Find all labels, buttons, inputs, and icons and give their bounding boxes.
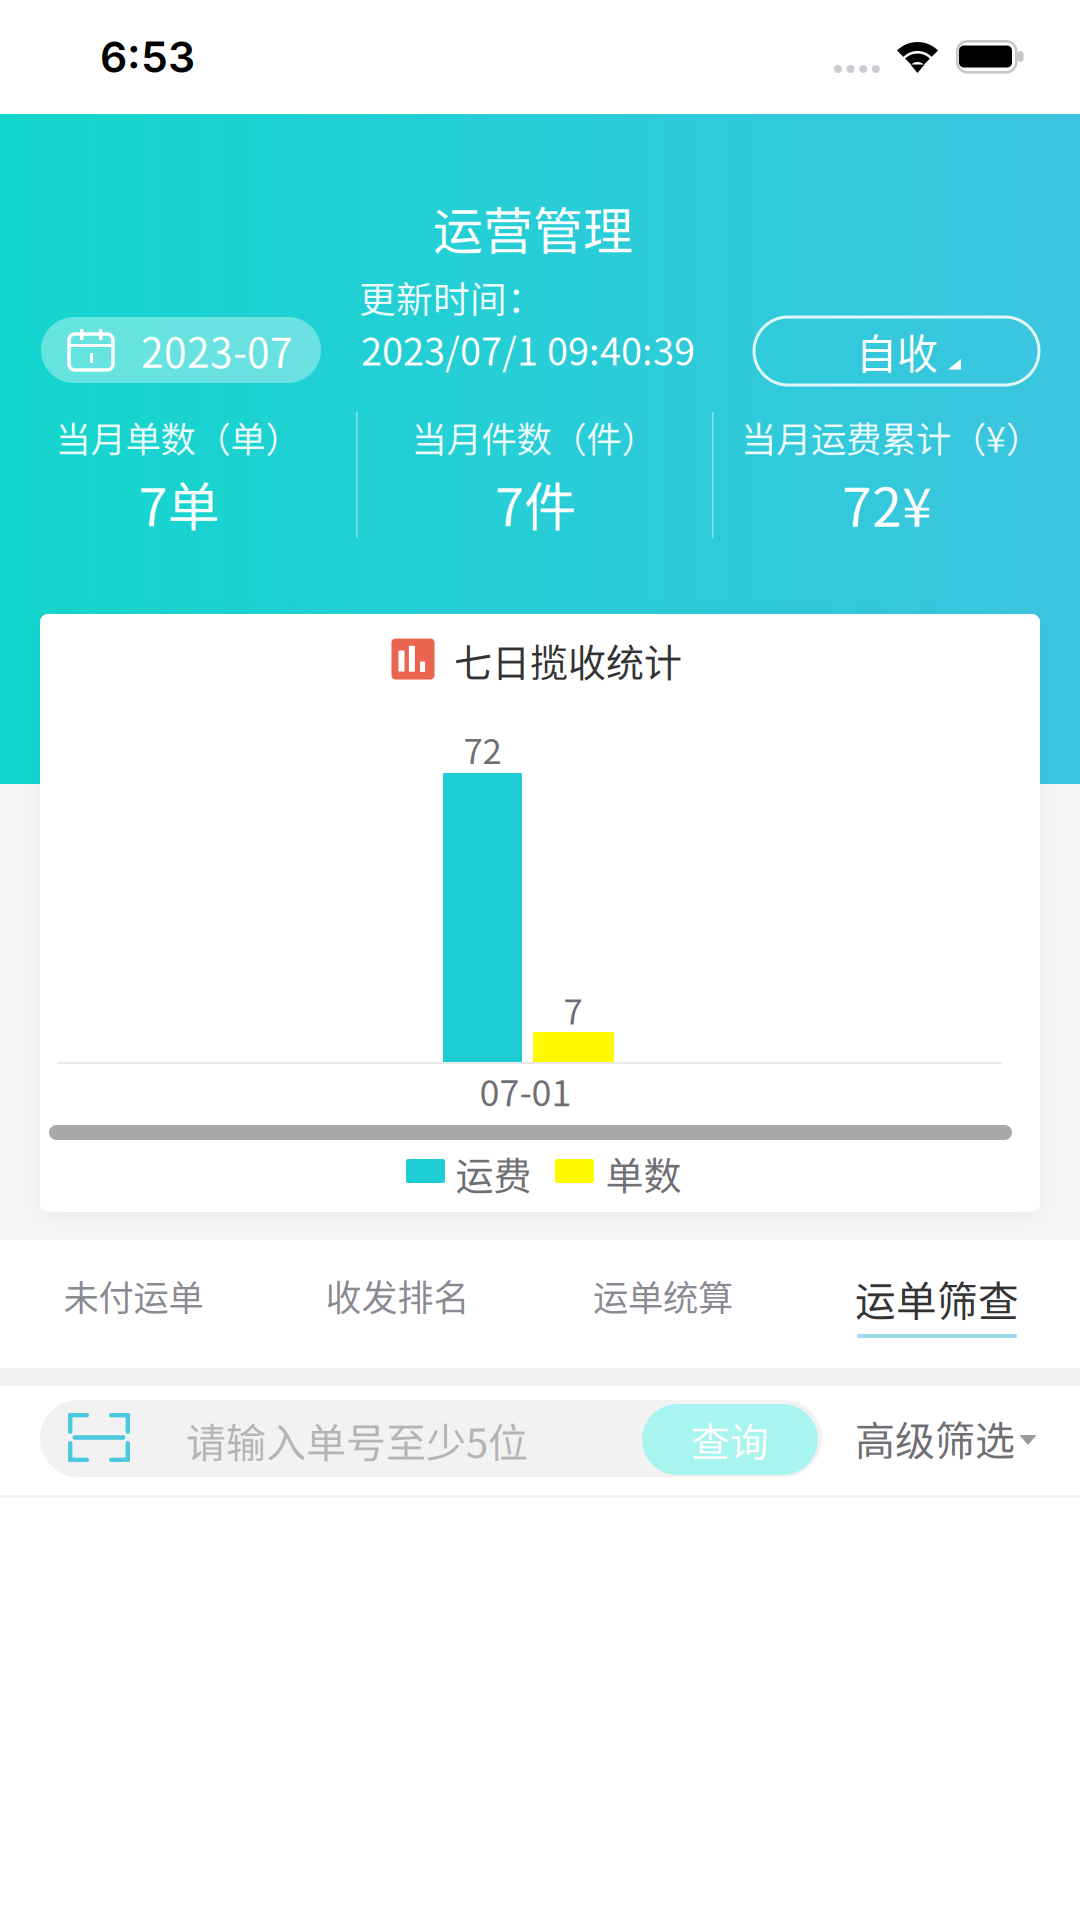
button[interactable]: 自收 <box>0 114 285 182</box>
staticText: 07-01 <box>479 1064 571 1116</box>
staticText: 单数 <box>605 1145 681 1200</box>
staticText: 运营管理 <box>433 191 633 264</box>
staticText: 7件 <box>495 466 576 541</box>
staticText: 运单筛查 <box>855 1269 1019 1328</box>
staticText: 2023-07 <box>141 321 293 379</box>
button[interactable]: 请输入单号至少5位 <box>0 1386 1080 1496</box>
staticText: 当月运费累计（¥） <box>741 411 1041 463</box>
staticText: 2023/07/1 09:40:39 <box>361 321 695 376</box>
button[interactable]: 未付运单 <box>0 1240 266 1370</box>
staticText: 请输入单号至少5位 <box>186 1411 528 1469</box>
button[interactable]: 运单筛查 <box>0 1240 282 1370</box>
staticText: 7 <box>563 984 582 1035</box>
button[interactable]: 高级筛选 <box>0 1386 1080 1496</box>
staticText: 6:53 <box>100 31 195 83</box>
button[interactable]: 查询 <box>0 1386 176 1457</box>
staticText: 72 <box>463 724 501 774</box>
button[interactable]: 扫描单号 <box>0 1386 160 1496</box>
button[interactable]: 2023-07 <box>0 114 280 180</box>
staticText: 72¥ <box>842 465 932 542</box>
staticText: 查询 <box>691 1411 769 1467</box>
button[interactable]: 收发排名 <box>0 1240 266 1370</box>
staticText: 自收 <box>856 321 938 381</box>
staticText: 7单 <box>138 466 219 541</box>
staticText: 当月件数（件） <box>411 411 656 463</box>
staticText: 高级筛选 <box>855 1409 1015 1467</box>
staticText: 收发排名 <box>325 1269 469 1321</box>
staticText: 运单统算 <box>593 1270 733 1321</box>
staticText: 未付运单 <box>63 1270 203 1321</box>
staticText: 七日揽收统计 <box>454 632 682 687</box>
staticText: 运费 <box>455 1145 531 1200</box>
button[interactable]: 运单统算 <box>0 1240 266 1370</box>
staticText: 当月单数（单） <box>55 411 300 463</box>
staticText: 更新时间： <box>359 270 544 324</box>
